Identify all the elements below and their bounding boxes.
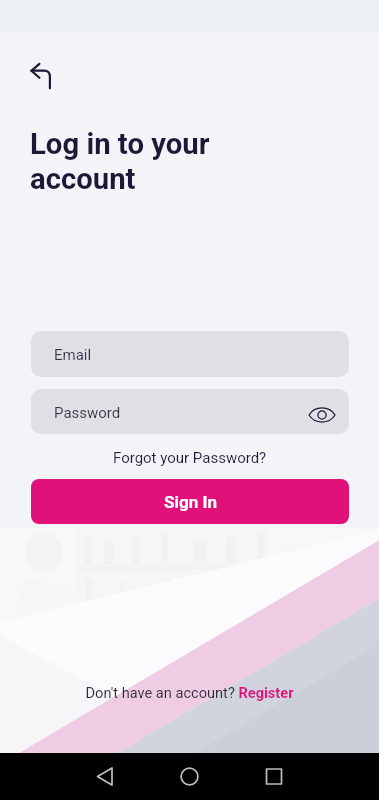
button[interactable]: Show password [305, 398, 339, 432]
staticText: Log in to your account [30, 127, 210, 196]
staticText: Sign In [164, 492, 217, 512]
staticText: Forgot your Password? [113, 449, 267, 467]
button[interactable]: Back [19, 52, 63, 96]
button[interactable]: Sign In [31, 479, 349, 524]
staticText: Email [54, 346, 92, 364]
button[interactable]: Don't have an account? Register [85, 684, 294, 701]
button[interactable]: Password [31, 389, 349, 434]
staticText: Password [54, 404, 121, 422]
button[interactable]: Email [31, 331, 349, 377]
button[interactable]: Forgot your Password? [0, 447, 379, 469]
